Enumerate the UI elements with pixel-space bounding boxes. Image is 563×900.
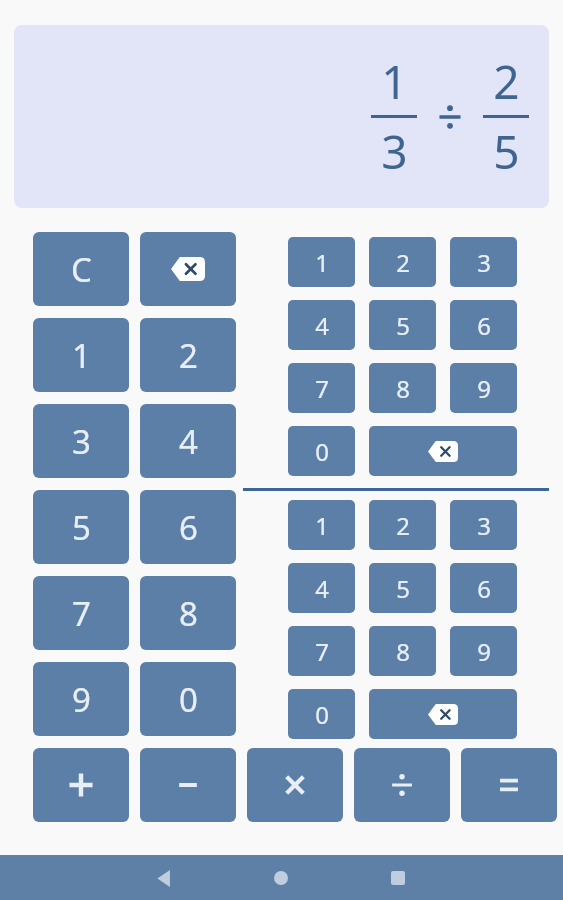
staticText: 6 [477, 309, 491, 342]
staticText: 2 [396, 246, 410, 279]
button[interactable]: Back [144, 867, 184, 889]
staticText: 9 [477, 372, 491, 405]
button[interactable]: 9 [450, 363, 517, 413]
staticText: 9 [72, 677, 91, 722]
button[interactable]: Backspace [140, 232, 236, 306]
button[interactable]: 6 [450, 563, 517, 613]
staticText: 8 [396, 372, 410, 405]
button[interactable]: 2 [369, 237, 436, 287]
button[interactable]: Recent apps [378, 867, 418, 889]
staticText: 8 [179, 591, 198, 636]
staticText: 4 [315, 309, 329, 342]
button[interactable]: 4 [140, 404, 236, 478]
staticText: 0 [315, 698, 329, 731]
button[interactable]: 8 [369, 626, 436, 676]
button[interactable]: Backspace [369, 426, 517, 476]
staticText: C [71, 247, 92, 292]
button[interactable]: 7 [288, 626, 355, 676]
staticText: 3 [477, 509, 491, 542]
button[interactable]: 4 [288, 300, 355, 350]
button[interactable]: 5 [33, 490, 129, 564]
button[interactable]: 4 [288, 563, 355, 613]
button[interactable]: 0 [288, 426, 355, 476]
staticText: 3 [72, 419, 91, 464]
staticText: 2 [396, 509, 410, 542]
button[interactable]: 9 [33, 662, 129, 736]
button[interactable]: 3 [450, 237, 517, 287]
staticText: 7 [72, 591, 91, 636]
button[interactable]: Divide [354, 748, 450, 822]
button[interactable]: 3 [450, 500, 517, 550]
staticText: 4 [179, 419, 198, 464]
staticText: 1 [381, 50, 408, 113]
button[interactable]: 0 [140, 662, 236, 736]
button[interactable]: 1 [33, 318, 129, 392]
staticText: 0 [315, 435, 329, 468]
button[interactable]: C [33, 232, 129, 306]
staticText: 5 [493, 120, 520, 183]
staticText: 2 [493, 50, 520, 113]
staticText: 3 [381, 120, 408, 183]
staticText: 4 [315, 572, 329, 605]
staticText: 2 [179, 333, 198, 378]
button[interactable]: 1 [288, 500, 355, 550]
button[interactable]: 7 [33, 576, 129, 650]
button[interactable]: Equals [461, 748, 557, 822]
button[interactable]: 0 [288, 689, 355, 739]
button[interactable]: Backspace [369, 689, 517, 739]
button[interactable]: 6 [450, 300, 517, 350]
staticText: 5 [72, 505, 91, 550]
button[interactable]: 5 [369, 563, 436, 613]
button[interactable]: 3 [33, 404, 129, 478]
button[interactable]: 1 [14, 25, 549, 208]
button[interactable]: Home [261, 867, 301, 889]
staticText: 7 [315, 372, 329, 405]
button[interactable]: 8 [369, 363, 436, 413]
staticText: 7 [315, 635, 329, 668]
button[interactable]: 6 [140, 490, 236, 564]
staticText: 3 [477, 246, 491, 279]
staticText: 6 [477, 572, 491, 605]
button[interactable]: 2 [140, 318, 236, 392]
staticText: 0 [179, 677, 198, 722]
staticText: 5 [396, 572, 410, 605]
staticText: 9 [477, 635, 491, 668]
button[interactable]: Minus [140, 748, 236, 822]
button[interactable]: Plus [33, 748, 129, 822]
button[interactable]: Multiply [247, 748, 343, 822]
button[interactable]: 7 [288, 363, 355, 413]
button[interactable]: 5 [369, 300, 436, 350]
staticText: 1 [315, 509, 329, 542]
staticText: 6 [179, 505, 198, 550]
button[interactable]: 2 [369, 500, 436, 550]
staticText: 5 [396, 309, 410, 342]
button[interactable]: 9 [450, 626, 517, 676]
staticText: 8 [396, 635, 410, 668]
button[interactable]: 8 [140, 576, 236, 650]
button[interactable]: 1 [288, 237, 355, 287]
staticText: 1 [72, 333, 91, 378]
staticText: 1 [315, 246, 329, 279]
